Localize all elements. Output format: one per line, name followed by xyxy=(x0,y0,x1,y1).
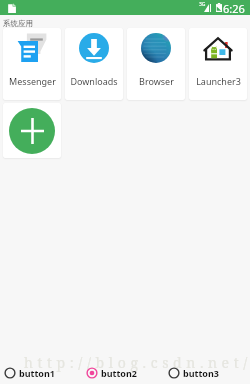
button[interactable]: Add application xyxy=(3,103,61,158)
button[interactable]: button3 xyxy=(168,367,250,379)
button[interactable]: button1 xyxy=(4,367,86,379)
staticText: http://blog.csdn.net/ xyxy=(24,353,250,372)
staticText: Browser xyxy=(139,75,174,87)
staticText: button3 xyxy=(183,367,219,379)
staticText: 6:26 xyxy=(223,1,245,16)
other: Notification xyxy=(8,3,16,13)
staticText: button2 xyxy=(101,367,137,379)
staticText: Downloads xyxy=(70,75,118,87)
button[interactable]: Downloads xyxy=(65,28,123,100)
staticText: Launcher3 xyxy=(196,75,241,87)
button[interactable]: Messenger xyxy=(3,28,61,100)
staticText: Messenger xyxy=(9,75,56,87)
staticText: 3G xyxy=(199,1,206,8)
staticText: 系统应用 xyxy=(3,19,33,28)
button[interactable]: Browser xyxy=(127,28,185,100)
button[interactable]: button2 xyxy=(86,367,168,379)
staticText: button1 xyxy=(19,367,55,379)
button[interactable]: Launcher3 xyxy=(189,28,247,100)
